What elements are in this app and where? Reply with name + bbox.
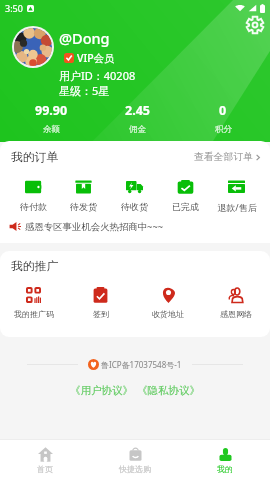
staticText: 我的推广码 bbox=[14, 309, 54, 319]
staticText: 感恩网络 bbox=[220, 309, 252, 319]
staticText: 收货地址 bbox=[152, 309, 184, 319]
staticText: 查看全部订单 bbox=[194, 151, 253, 163]
staticText: 退款/售后 bbox=[217, 201, 257, 213]
button[interactable]: 2.45 bbox=[94, 102, 180, 135]
staticText: 感恩专区事业机会火热招商中~~~ bbox=[25, 220, 164, 233]
staticText: 我的订单 bbox=[11, 150, 59, 165]
staticText: 待发货 bbox=[70, 201, 97, 212]
button[interactable]: 待发货 bbox=[58, 173, 109, 212]
button[interactable]: 99.90 bbox=[9, 102, 94, 135]
staticText: 鲁ICP备17037548号-1 bbox=[101, 359, 182, 370]
button[interactable]: 0 bbox=[180, 102, 266, 135]
staticText: 快捷选购 bbox=[119, 464, 151, 474]
button[interactable]: 已完成 bbox=[160, 173, 211, 212]
button[interactable]: 待付款 bbox=[8, 173, 58, 212]
button[interactable]: 感恩专区事业机会火热招商中~~~ bbox=[9, 213, 261, 240]
staticText: 待付款 bbox=[20, 201, 47, 212]
staticText: 首页 bbox=[37, 464, 53, 474]
button[interactable]: 快捷选购 bbox=[90, 440, 180, 480]
button[interactable]: 我的推广码 bbox=[0, 281, 67, 319]
button[interactable]: 签到 bbox=[67, 281, 134, 319]
staticText: 待收货 bbox=[121, 201, 148, 212]
staticText: 星级：5星 bbox=[59, 83, 110, 98]
staticText: 用户ID：40208 bbox=[59, 68, 136, 83]
button[interactable]: 我的 bbox=[180, 440, 270, 480]
staticText: @Dong bbox=[59, 28, 110, 48]
staticText: 已完成 bbox=[172, 201, 199, 212]
button[interactable]: Avatar bbox=[14, 28, 52, 66]
staticText: 佣金 bbox=[129, 124, 146, 135]
button[interactable]: 《隐私协议》 bbox=[137, 384, 200, 397]
staticText: 我的 bbox=[217, 464, 233, 474]
staticText: 0 bbox=[219, 102, 227, 119]
staticText: 余额 bbox=[43, 124, 60, 135]
button[interactable]: 收货地址 bbox=[134, 281, 202, 319]
button[interactable]: 查看全部订单 bbox=[194, 151, 260, 163]
button[interactable]: 感恩网络 bbox=[202, 281, 270, 319]
button[interactable]: 《用户协议》 bbox=[70, 384, 133, 397]
staticText: 我的推广 bbox=[11, 259, 59, 274]
staticText: 2.45 bbox=[125, 102, 150, 119]
button[interactable]: 待收货 bbox=[109, 173, 160, 212]
button[interactable]: 首页 bbox=[0, 440, 90, 480]
button[interactable]: Settings bbox=[246, 16, 264, 34]
staticText: 99.90 bbox=[35, 102, 68, 119]
staticText: 3:50 bbox=[5, 2, 23, 14]
staticText: 签到 bbox=[93, 309, 109, 319]
button[interactable]: 退款/售后 bbox=[211, 173, 262, 213]
staticText: VIP会员 bbox=[77, 51, 115, 65]
staticText: 积分 bbox=[215, 124, 232, 135]
